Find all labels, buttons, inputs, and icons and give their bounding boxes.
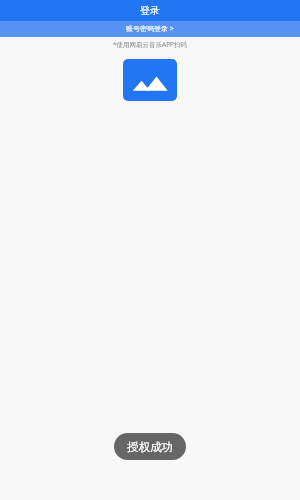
button[interactable]: 二维码 QR code placeholder: [123, 59, 177, 101]
staticText: 授权成功: [127, 440, 173, 454]
staticText: 登录: [140, 4, 160, 17]
button[interactable]: 授权成功: [114, 433, 186, 460]
staticText: *使用网易云音乐APP扫码: [0, 40, 300, 49]
button[interactable]: 账号密码登录 >: [0, 21, 300, 37]
staticText: 账号密码登录 >: [126, 24, 174, 34]
